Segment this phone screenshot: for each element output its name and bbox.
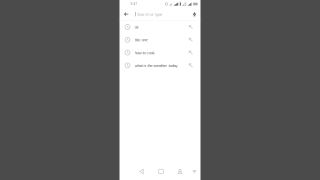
staticText: Search or type bbox=[137, 11, 162, 17]
button[interactable]: Hide keyboard bbox=[189, 165, 199, 177]
button[interactable]: bbc one bbox=[119, 33, 200, 46]
button[interactable]: Home bbox=[155, 165, 166, 177]
button[interactable]: Back bbox=[119, 8, 133, 21]
button[interactable]: ok bbox=[119, 21, 200, 33]
staticText: 9:41 bbox=[130, 2, 137, 6]
button[interactable]: what is the weather today bbox=[119, 59, 200, 72]
button[interactable]: how to cook bbox=[119, 46, 200, 59]
staticText: what is the weather today bbox=[134, 63, 177, 68]
button[interactable]: Voice search bbox=[188, 8, 200, 21]
staticText: ok bbox=[134, 24, 138, 30]
button[interactable]: Recents bbox=[174, 165, 185, 177]
staticText: how to cook bbox=[134, 50, 154, 55]
staticText: bbc one bbox=[134, 37, 147, 42]
button[interactable]: Back bbox=[136, 165, 147, 177]
